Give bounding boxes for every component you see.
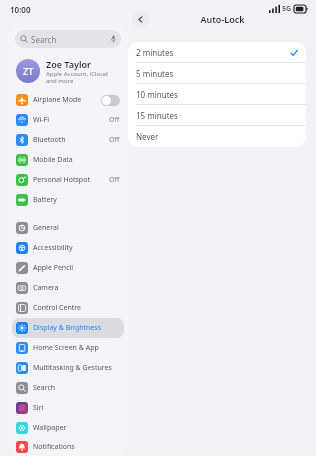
button[interactable]: General — [12, 218, 124, 238]
button[interactable]: Wallpaper — [12, 418, 124, 438]
button[interactable]: Display & Brightness — [12, 318, 124, 338]
button[interactable]: Airplane Mode — [12, 90, 124, 110]
button[interactable]: Control Centre — [12, 298, 124, 318]
staticText: ZT — [23, 65, 34, 77]
staticText: 5 minutes — [136, 68, 174, 79]
button[interactable]: Apple Pencil — [12, 258, 124, 278]
staticText: Search — [33, 383, 56, 393]
staticText: 10 minutes — [136, 89, 178, 100]
staticText: Airplane Mode — [33, 95, 82, 105]
button[interactable]: 5 minutes — [128, 63, 306, 84]
staticText: Camera — [33, 283, 59, 293]
button[interactable]: Personal Hotspot — [12, 170, 124, 190]
staticText: 5G — [282, 4, 292, 14]
staticText: Mobile Data — [33, 155, 73, 165]
staticText: Control Centre — [33, 303, 82, 313]
button[interactable]: 10 minutes — [128, 84, 306, 105]
button[interactable]: Bluetooth — [12, 130, 124, 150]
staticText: Home Screen & App Library — [33, 343, 120, 353]
staticText: 10:00 — [10, 4, 31, 15]
staticText: Battery — [33, 195, 57, 205]
staticText: Zoe Taylor — [46, 58, 91, 70]
staticText: Wi-Fi — [33, 115, 50, 125]
button[interactable]: Search — [15, 30, 121, 48]
button[interactable]: Home Screen & App Library — [12, 338, 124, 358]
button[interactable]: Airplane Mode toggle — [101, 95, 120, 106]
staticText: Bluetooth — [33, 135, 66, 145]
staticText: 15 minutes — [136, 110, 178, 121]
staticText: 2 minutes — [136, 47, 174, 58]
button[interactable]: 2 minutes — [128, 42, 306, 63]
button[interactable]: Never — [128, 126, 306, 147]
staticText: Wallpaper — [33, 423, 67, 433]
button[interactable]: Battery — [12, 190, 124, 210]
staticText: Apple Account, iCloud and more — [46, 70, 108, 85]
staticText: Display & Brightness — [33, 323, 102, 333]
button[interactable]: Wi-Fi — [12, 110, 124, 130]
staticText: Notifications — [33, 442, 75, 452]
staticText: Auto-Lock — [200, 13, 245, 25]
staticText: Siri — [33, 403, 44, 413]
staticText: Accessibility — [33, 243, 73, 253]
button[interactable]: Search — [12, 378, 124, 398]
button[interactable]: Back — [132, 11, 149, 28]
staticText: Off — [109, 135, 120, 145]
staticText: Off — [109, 175, 120, 185]
button[interactable]: Camera — [12, 278, 124, 298]
button[interactable]: Multitasking & Gestures — [12, 358, 124, 378]
staticText: General — [33, 223, 59, 233]
staticText: Apple Pencil — [33, 263, 74, 273]
staticText: Off — [109, 115, 120, 125]
button[interactable]: Siri — [12, 398, 124, 418]
staticText: Never — [136, 131, 159, 142]
button[interactable]: 15 minutes — [128, 105, 306, 126]
button[interactable]: Accessibility — [12, 238, 124, 258]
staticText: Personal Hotspot — [33, 175, 90, 185]
button[interactable]: ZT — [8, 54, 128, 88]
staticText: Search — [31, 34, 57, 45]
staticText: Multitasking & Gestures — [33, 363, 112, 373]
button[interactable]: Notifications — [12, 438, 124, 456]
button[interactable]: Mobile Data — [12, 150, 124, 170]
